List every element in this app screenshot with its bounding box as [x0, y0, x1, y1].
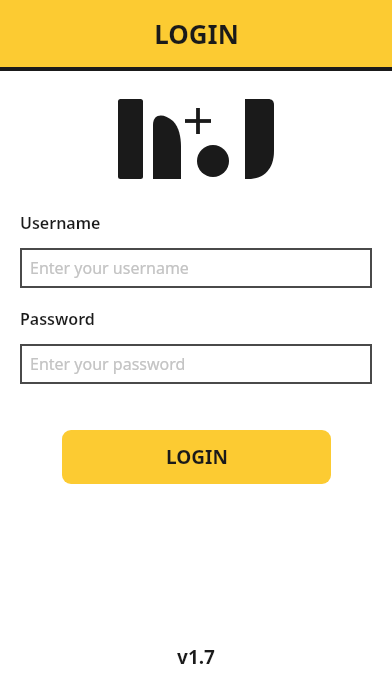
staticText: LOGIN	[166, 444, 228, 470]
button[interactable]: Enter your username	[20, 248, 372, 288]
staticText: Enter your password	[30, 353, 186, 375]
staticText: v1.7	[177, 644, 215, 670]
button[interactable]: LOGIN	[62, 430, 331, 484]
staticText: Password	[20, 308, 95, 330]
button[interactable]: Enter your password	[20, 344, 372, 384]
staticText: LOGIN	[154, 16, 239, 51]
staticText: Enter your username	[30, 257, 189, 279]
staticText: Username	[20, 212, 101, 234]
